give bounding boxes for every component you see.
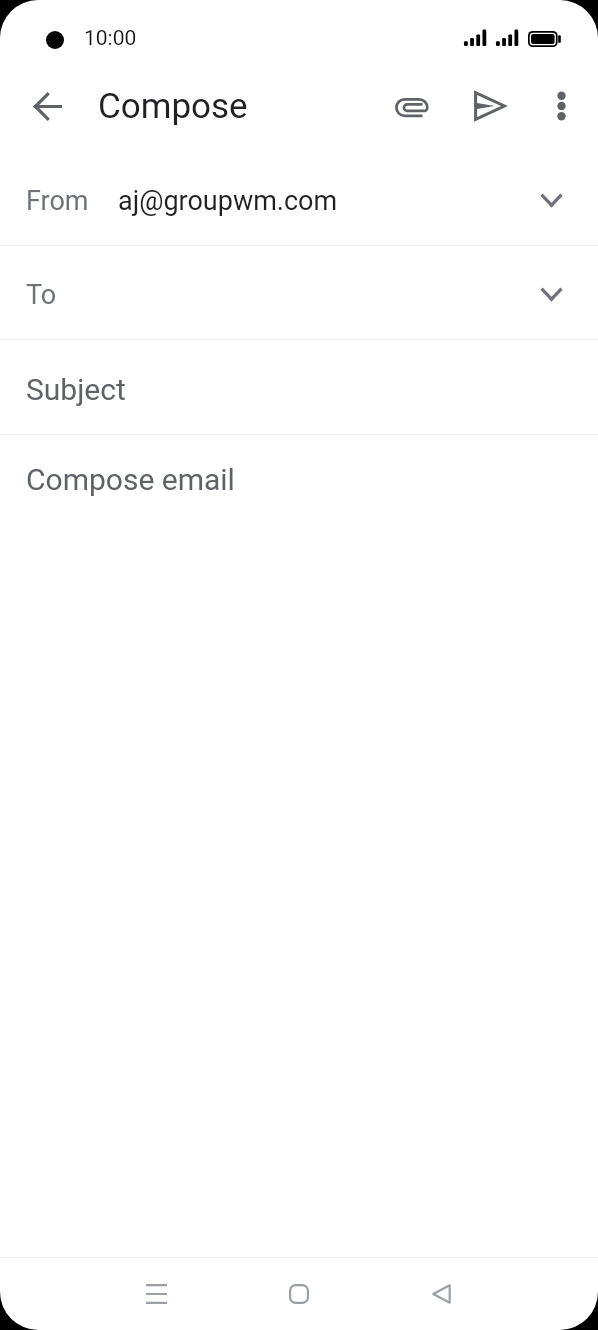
staticText: Compose — [98, 86, 248, 127]
button[interactable]: Subject — [0, 340, 598, 434]
button[interactable]: Send — [459, 76, 519, 136]
staticText: To — [26, 279, 57, 311]
staticText: 10:00 — [84, 26, 137, 51]
button[interactable]: Back — [405, 1258, 477, 1330]
button[interactable]: Compose email — [0, 435, 598, 519]
button[interactable]: Show Cc and Bcc — [541, 288, 562, 301]
staticText: aj@groupwm.com — [118, 185, 338, 217]
button[interactable]: From — [0, 152, 598, 245]
button[interactable]: To — [0, 246, 598, 339]
staticText: Subject — [26, 372, 126, 407]
button[interactable]: Show sender options — [541, 194, 562, 207]
button[interactable]: More options — [531, 76, 591, 136]
staticText: From — [26, 185, 89, 217]
button[interactable]: Navigate up — [17, 76, 77, 136]
staticText: Compose email — [26, 462, 235, 497]
button[interactable]: Attach file — [382, 76, 442, 136]
button[interactable]: Recent apps — [120, 1258, 192, 1330]
button[interactable]: Home — [263, 1258, 335, 1330]
